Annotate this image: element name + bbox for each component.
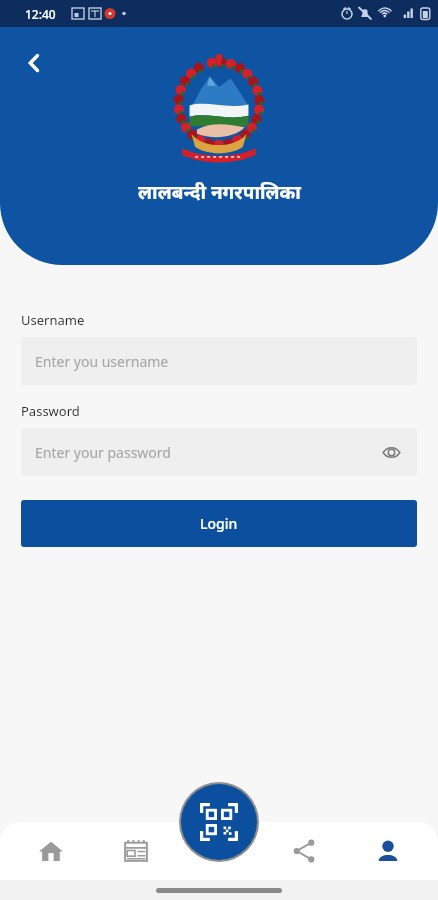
staticText: Enter you username bbox=[35, 352, 169, 371]
button[interactable]: Login bbox=[21, 500, 417, 547]
staticText: Password bbox=[21, 402, 80, 420]
button[interactable]: Enter your password bbox=[21, 428, 417, 476]
staticText: Enter your password bbox=[35, 443, 171, 462]
button[interactable]: Show password bbox=[377, 438, 405, 466]
staticText: Username bbox=[21, 311, 85, 329]
staticText: Login bbox=[200, 514, 238, 533]
button[interactable]: Profile bbox=[346, 822, 430, 880]
button[interactable]: Scan QR code bbox=[181, 784, 257, 860]
staticText: 12:40 bbox=[25, 6, 56, 22]
button[interactable]: Calendar bbox=[93, 822, 178, 880]
button[interactable]: Home bbox=[8, 822, 93, 880]
staticText: लालबन्दी नगरपालिका bbox=[138, 179, 301, 205]
button[interactable]: Share bbox=[262, 822, 346, 880]
button[interactable]: Enter you username bbox=[21, 337, 417, 385]
button[interactable]: Back bbox=[12, 41, 56, 85]
